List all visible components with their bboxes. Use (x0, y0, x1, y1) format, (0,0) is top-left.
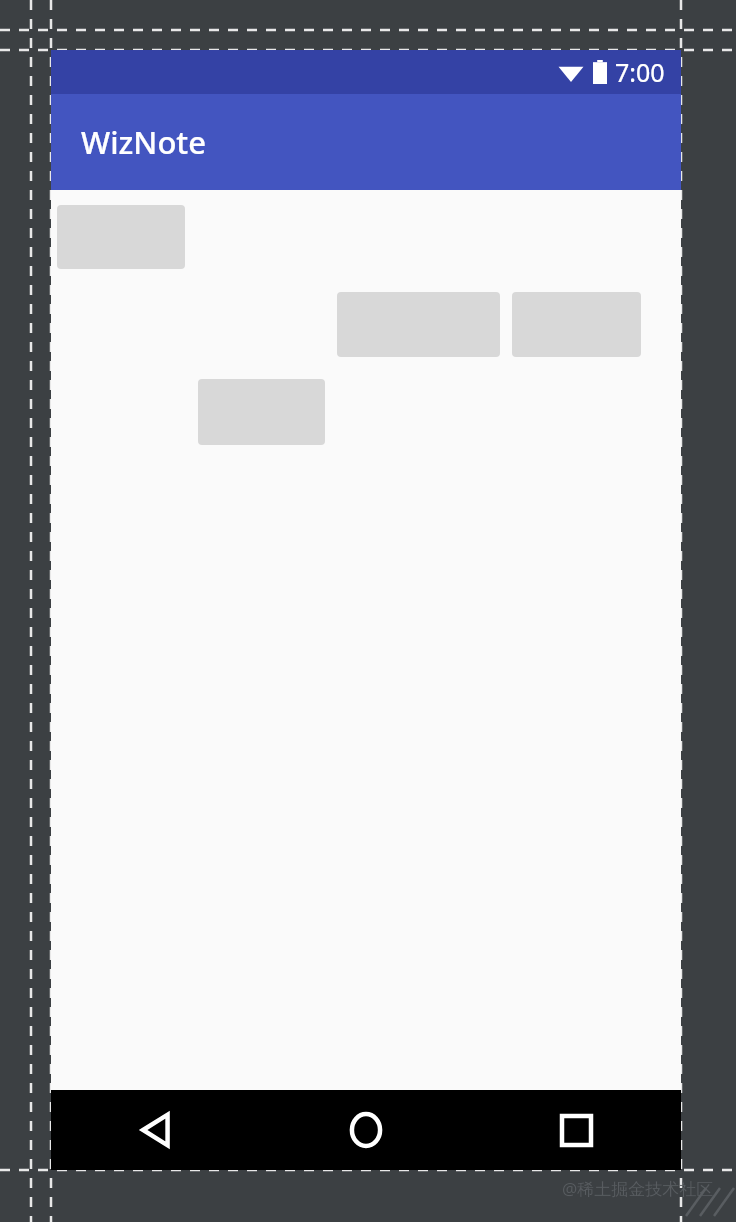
other: Battery (593, 60, 607, 84)
staticText: WizNote (81, 121, 206, 163)
button[interactable]: Recent apps (471, 1090, 681, 1170)
button[interactable]: Back (51, 1090, 261, 1170)
other: Wi-Fi (558, 61, 584, 83)
button[interactable]: Home (261, 1090, 471, 1170)
staticText: 7:00 (615, 55, 665, 89)
staticText: @稀土掘金技术社区 (562, 1177, 714, 1200)
